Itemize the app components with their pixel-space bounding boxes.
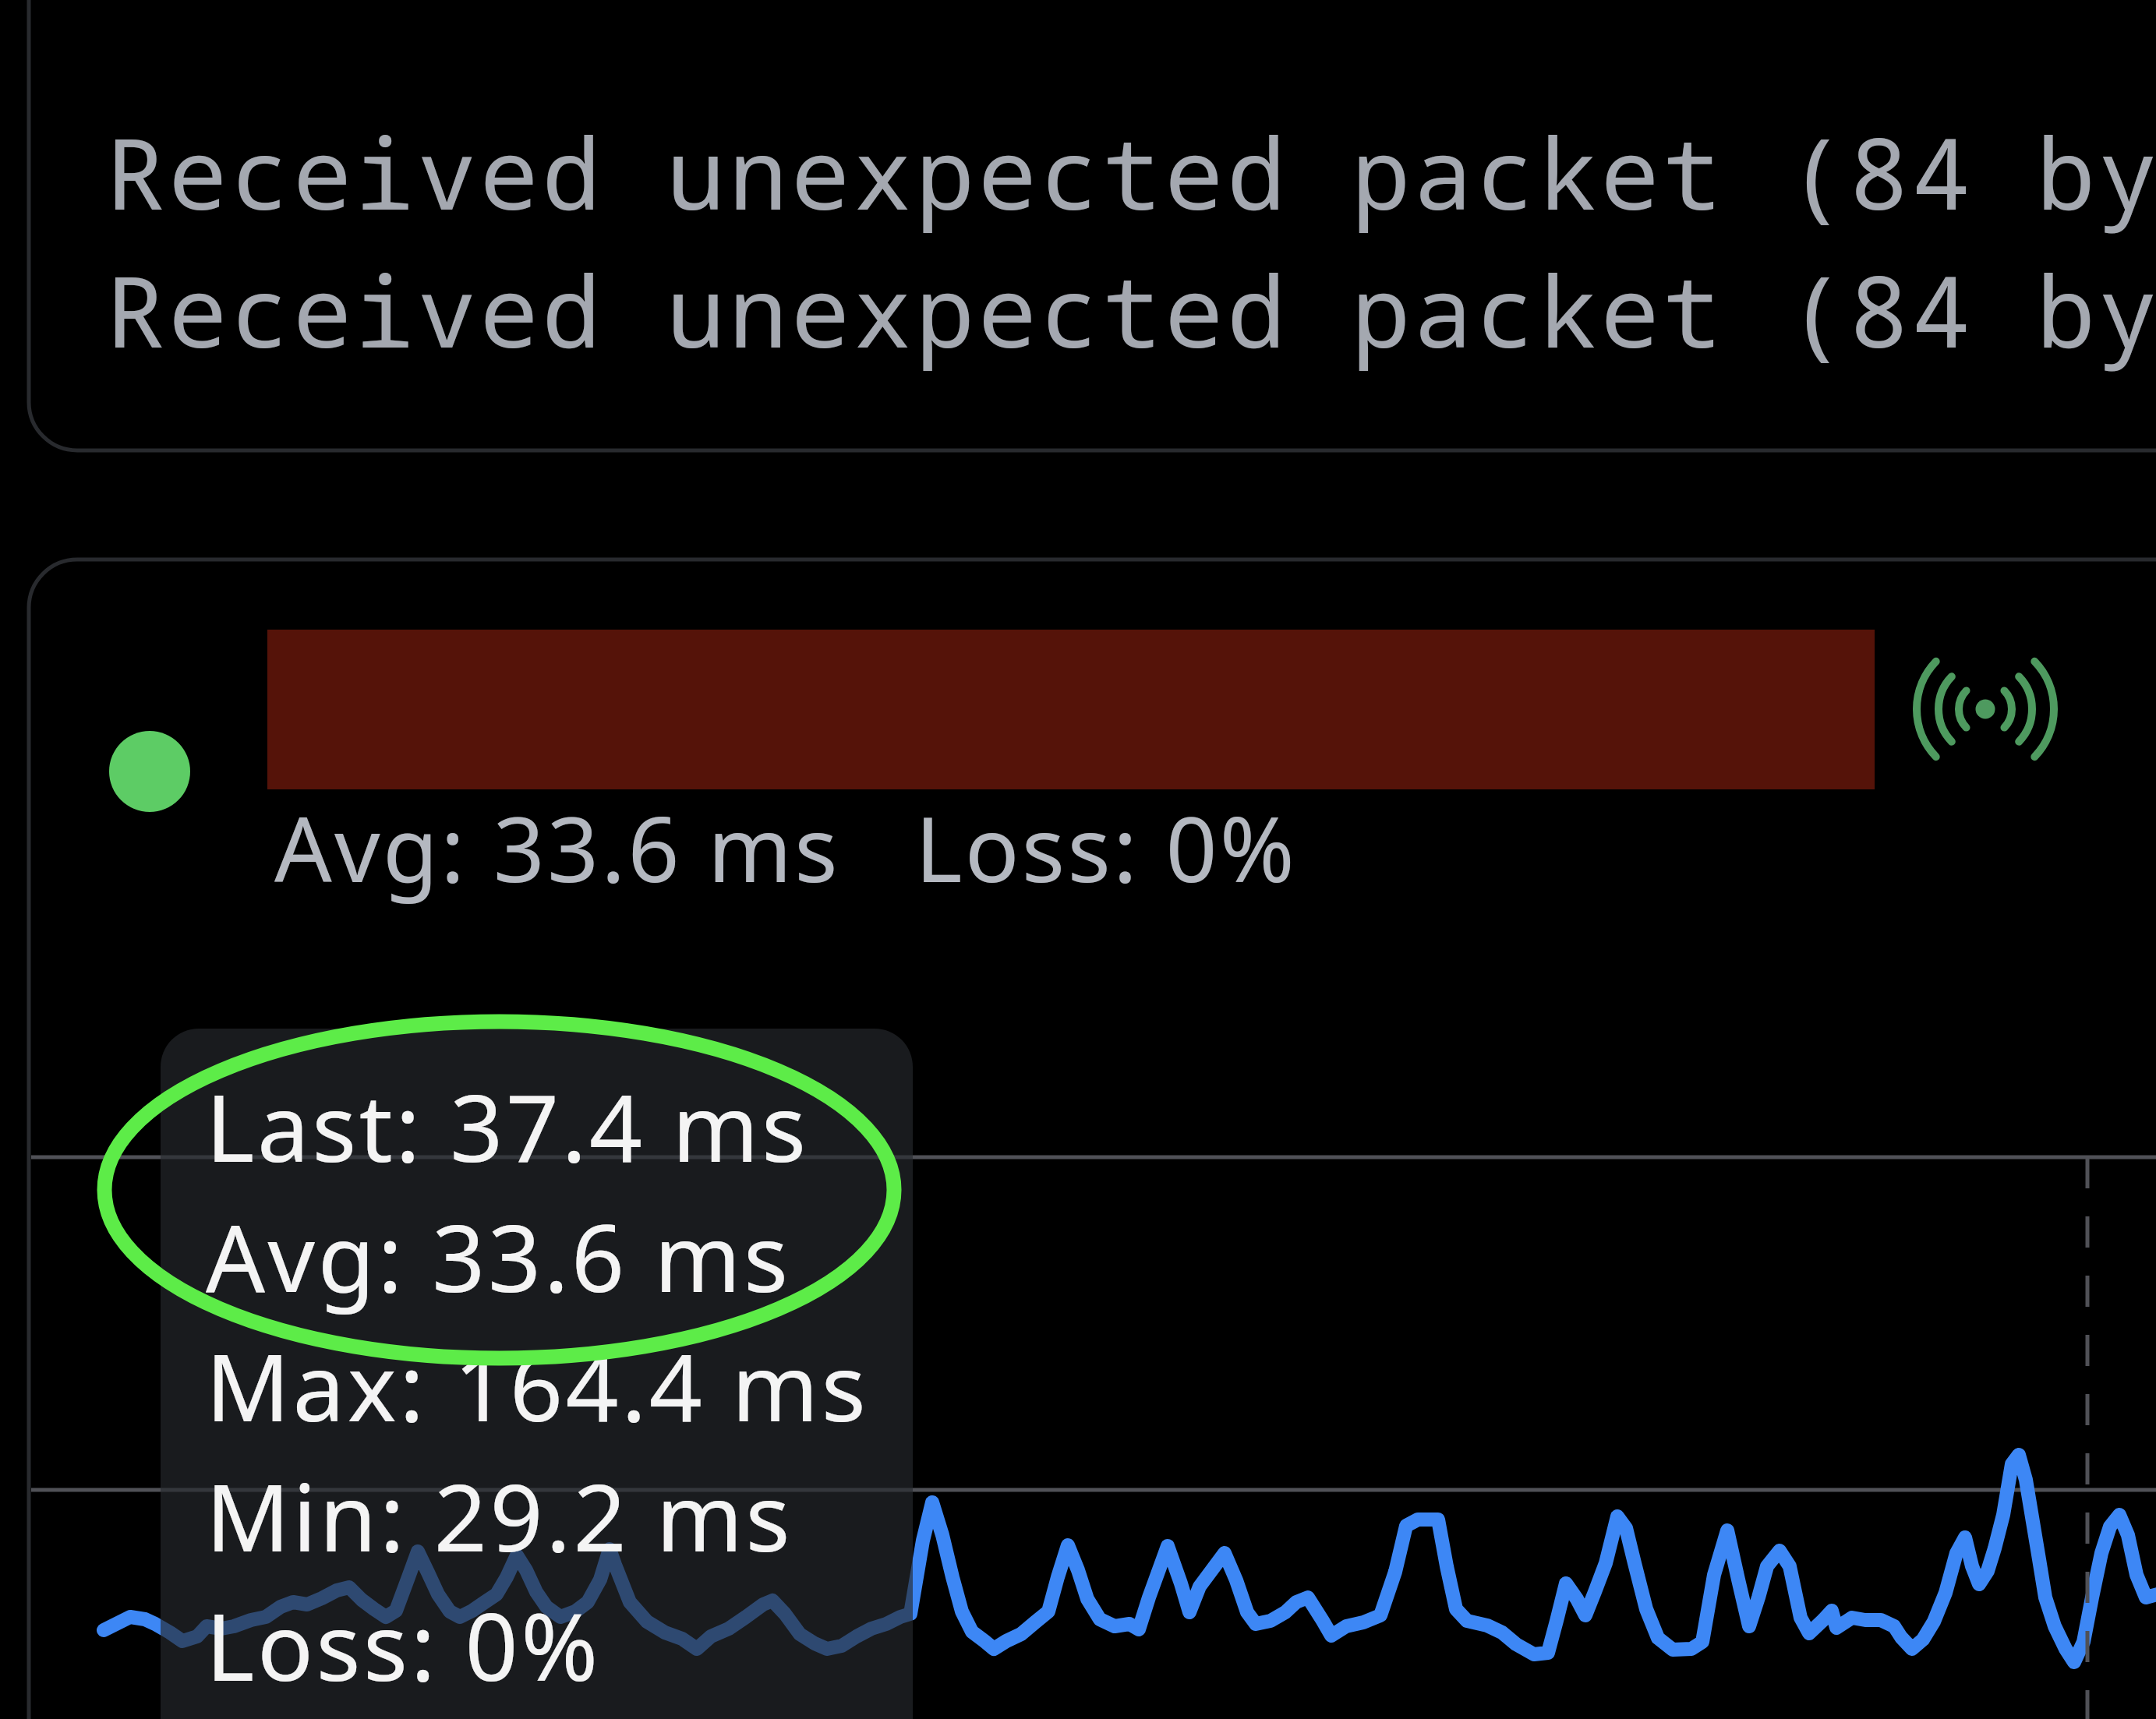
button[interactable]: Signal strength xyxy=(1894,618,2076,800)
button[interactable]: Host latency chart xyxy=(29,559,2156,1719)
button[interactable]: Latency statistics xyxy=(161,1029,913,1719)
button[interactable]: Ping log output xyxy=(29,0,2156,450)
